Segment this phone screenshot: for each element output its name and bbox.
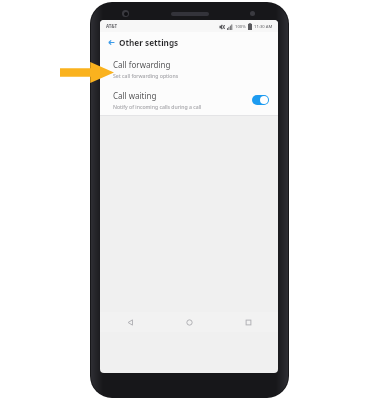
staticText: AT&T	[106, 23, 118, 29]
button[interactable]: Back	[105, 36, 118, 49]
button[interactable]: Recent apps	[219, 312, 278, 332]
staticText: Other settings	[119, 37, 179, 48]
button[interactable]: Back	[100, 312, 160, 332]
staticText: Call waiting	[113, 90, 157, 101]
staticText: 100%	[235, 24, 246, 30]
staticText: Notify of incoming calls during a call	[113, 103, 202, 110]
button[interactable]: Home	[160, 312, 219, 332]
button[interactable]: Call waiting toggle, on	[250, 93, 270, 107]
button[interactable]: Call forwarding	[100, 53, 278, 84]
staticText: Set call forwarding options	[113, 72, 179, 79]
button[interactable]: Call waiting	[100, 84, 278, 115]
staticText: 11:30 AM	[254, 24, 273, 30]
staticText: Call forwarding	[113, 59, 171, 70]
